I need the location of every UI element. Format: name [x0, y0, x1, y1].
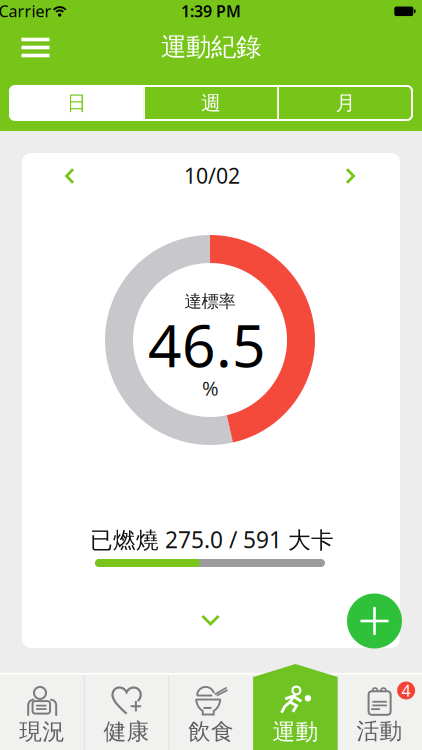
staticText: 健康: [104, 718, 150, 746]
staticText: Carrier: [0, 0, 51, 22]
button[interactable]: 日: [10, 86, 143, 120]
button[interactable]: 飲食: [169, 685, 253, 747]
button[interactable]: 運動: [253, 685, 337, 747]
staticText: 達標率: [184, 291, 235, 312]
staticText: 現況: [19, 718, 65, 746]
staticText: 運動: [272, 718, 318, 746]
staticText: 46.5: [148, 305, 266, 383]
staticText: 1:39 PM: [181, 0, 241, 22]
button[interactable]: 週: [145, 86, 277, 120]
staticText: %: [202, 375, 219, 401]
button[interactable]: Expand: [192, 608, 228, 632]
staticText: 4: [402, 680, 411, 701]
staticText: 週: [201, 91, 221, 115]
staticText: 10/02: [184, 161, 240, 190]
button[interactable]: 健康: [85, 685, 169, 747]
button[interactable]: 月: [279, 86, 412, 120]
staticText: 運動紀錄: [161, 31, 261, 62]
staticText: 日: [67, 91, 87, 115]
button[interactable]: Menu: [13, 29, 57, 65]
button[interactable]: Next day: [332, 161, 368, 191]
button[interactable]: Previous day: [52, 161, 88, 191]
staticText: 活動: [357, 717, 403, 745]
button[interactable]: Add: [347, 593, 402, 648]
button[interactable]: 現況: [0, 685, 84, 747]
staticText: 飲食: [188, 718, 234, 746]
staticText: 月: [335, 91, 355, 115]
staticText: 已燃燒 275.0 / 591 大卡: [90, 524, 334, 554]
button[interactable]: 活動: [338, 685, 422, 747]
